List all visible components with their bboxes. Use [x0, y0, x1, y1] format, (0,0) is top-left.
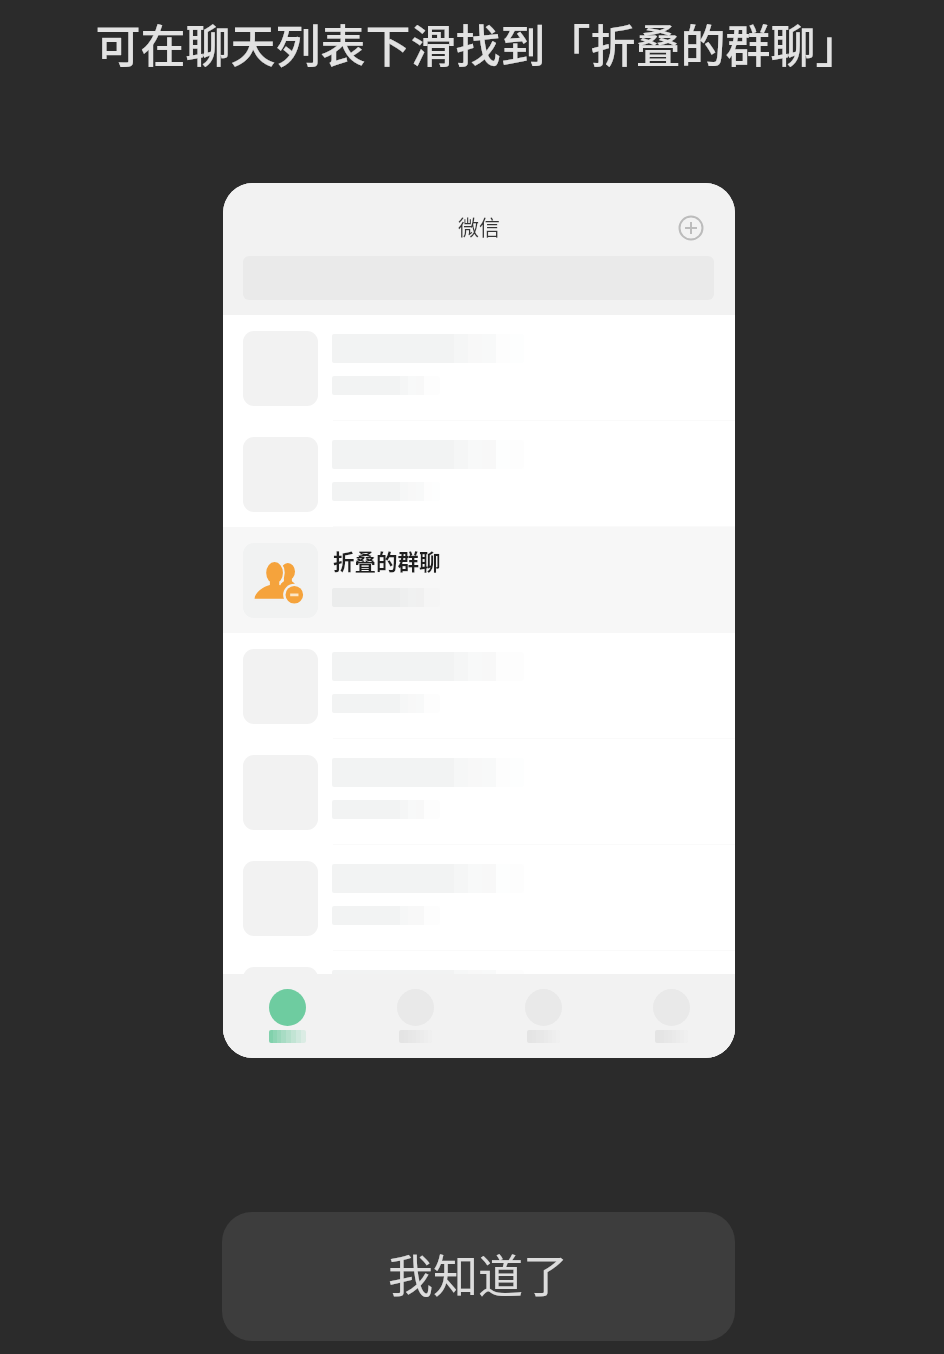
button[interactable]: Chats: [223, 974, 351, 1058]
button[interactable]: [223, 633, 735, 739]
staticText: 折叠的群聊: [333, 545, 441, 576]
button[interactable]: 我知道了: [222, 1212, 735, 1341]
button[interactable]: Add: [678, 215, 704, 241]
staticText: 微信: [223, 211, 735, 241]
button[interactable]: 折叠的群聊: [223, 527, 735, 633]
button[interactable]: [223, 845, 735, 951]
staticText: 我知道了: [388, 1241, 569, 1306]
button[interactable]: Contacts: [351, 974, 479, 1058]
button[interactable]: [223, 739, 735, 845]
button[interactable]: Discover: [479, 974, 607, 1058]
button[interactable]: [223, 421, 735, 527]
button[interactable]: [223, 951, 735, 1057]
button[interactable]: [223, 315, 735, 421]
button[interactable]: Me: [607, 974, 735, 1058]
staticText: 可在聊天列表下滑找到「折叠的群聊」: [6, 11, 944, 76]
